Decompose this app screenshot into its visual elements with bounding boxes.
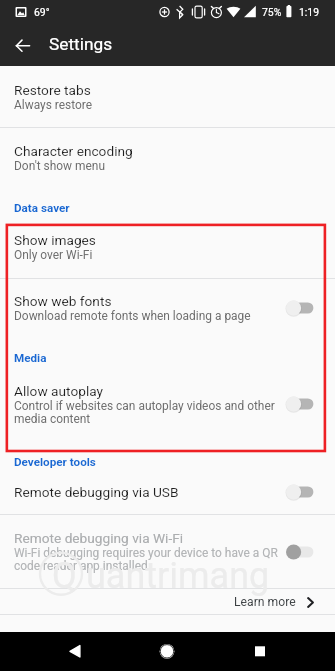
staticText: Data saver [14,201,70,215]
staticText: Allow autoplay [14,383,104,399]
staticText: Download remote fonts when loading a pag… [14,309,251,323]
staticText: Character encoding [14,143,133,159]
staticText: Control if websites can autoplay videos … [14,399,275,426]
staticText: Show web fonts [14,293,112,309]
button[interactable]: Character encoding [0,128,335,188]
button[interactable]: Show web fonts [0,279,335,337]
staticText: Q [52,555,77,597]
button[interactable]: Remote debugging via USB [0,470,335,514]
staticText: Restore tabs [14,82,91,98]
button[interactable]: Navigate up [0,24,46,66]
staticText: uantrimang [86,555,270,597]
button[interactable]: Learn more [224,595,335,609]
button[interactable]: Back [55,632,95,671]
button[interactable]: Recent apps [240,632,280,671]
staticText: Don't show menu [14,159,106,173]
staticText: Remote debugging via USB [14,484,179,500]
button[interactable]: Restore tabs [0,66,335,127]
button[interactable]: Toggle [286,542,314,562]
staticText: Learn more [234,595,296,609]
button[interactable]: Remote debugging via Wi-Fi [0,515,335,588]
staticText: Show images [14,232,96,248]
button[interactable]: Toggle [286,298,314,318]
button[interactable]: Toggle [286,394,314,414]
staticText: Remote debugging via Wi-Fi [14,530,184,546]
staticText: Wi-Fi debugging requires your device to … [14,546,278,573]
staticText: 69° [34,6,50,18]
button[interactable]: Show images [0,215,335,278]
staticText: Settings [49,34,113,54]
staticText: Media [14,351,47,365]
staticText: 75% [262,6,282,18]
staticText: 1:19 [299,6,320,18]
button[interactable]: Toggle [286,482,314,502]
staticText: Only over Wi-Fi [14,248,93,262]
staticText: Always restore [14,98,93,112]
staticText: Developer tools [14,455,96,469]
button[interactable]: Allow autoplay [0,366,335,442]
button[interactable]: Home [147,632,187,671]
